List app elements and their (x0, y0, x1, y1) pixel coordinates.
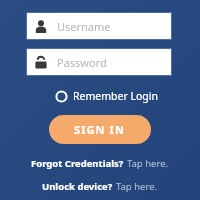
staticText: Tap here. (127, 157, 169, 170)
button[interactable]: Username (27, 13, 171, 39)
staticText: Password (57, 55, 107, 70)
button[interactable]: SIGN IN (49, 115, 151, 144)
staticText: SIGN IN (74, 122, 126, 137)
button[interactable]: Forgot Credentials? (0, 154, 200, 172)
button[interactable]: Remember Login (54, 88, 159, 104)
staticText: Remember Login (73, 89, 158, 103)
button[interactable]: Unlock device? (0, 177, 200, 195)
button[interactable]: Password (27, 49, 171, 75)
staticText: Username (57, 19, 111, 34)
staticText: Forgot Credentials? (31, 157, 124, 170)
staticText: Unlock device? (42, 180, 113, 193)
staticText: Tap here. (116, 180, 158, 193)
